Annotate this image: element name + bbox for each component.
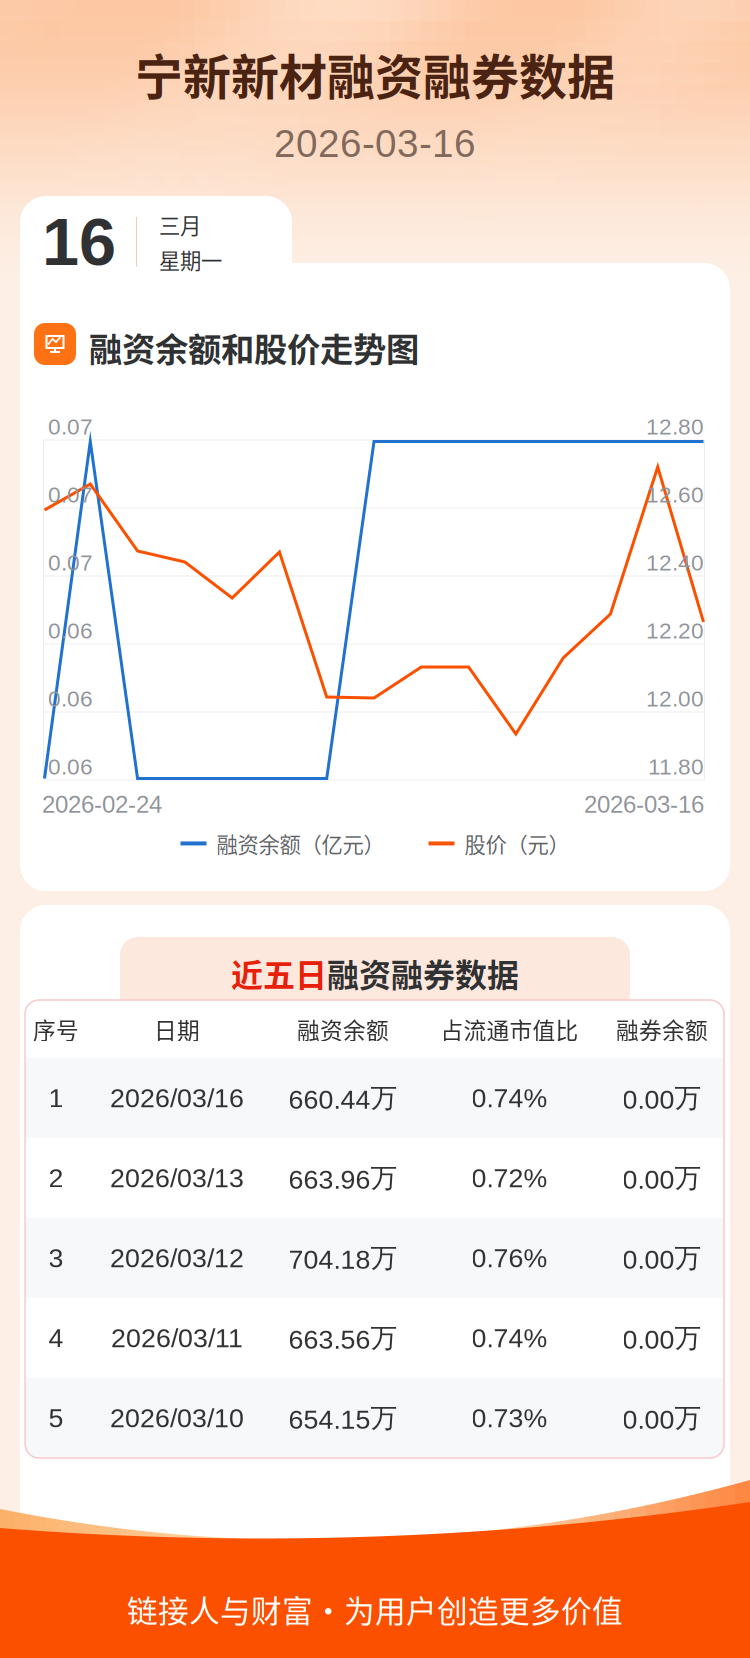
- staticText: 星期一: [159, 244, 222, 275]
- staticText: 660.44万: [288, 1081, 397, 1115]
- staticText: 2026/03/16: [110, 1083, 244, 1113]
- staticText: 0.06: [48, 686, 93, 711]
- staticText: 0.00万: [622, 1081, 701, 1115]
- staticText: 0.07: [48, 482, 93, 507]
- staticText: 663.96万: [288, 1161, 397, 1195]
- staticText: 占流通市值比: [440, 1013, 578, 1045]
- staticText: 2: [48, 1163, 63, 1193]
- staticText: 12.00: [646, 686, 704, 711]
- staticText: 12.20: [646, 618, 704, 643]
- staticText: 0.74%: [471, 1083, 547, 1113]
- staticText: 704.18万: [288, 1241, 397, 1275]
- staticText: 12.60: [646, 482, 704, 507]
- staticText: 0.06: [48, 618, 93, 643]
- staticText: 2026/03/13: [110, 1163, 244, 1193]
- staticText: 0.06: [48, 754, 93, 779]
- staticText: 近五日: [231, 950, 327, 996]
- staticText: 融资融券数据: [327, 950, 519, 996]
- staticText: 融资余额（亿元）: [216, 828, 384, 859]
- staticText: 2026-03-16: [584, 791, 704, 818]
- staticText: 0.00万: [622, 1401, 701, 1435]
- staticText: 融券余额: [616, 1013, 708, 1045]
- staticText: 股价（元）: [464, 828, 569, 859]
- staticText: 3: [48, 1243, 63, 1273]
- staticText: 0.07: [48, 414, 93, 439]
- staticText: 12.80: [646, 414, 704, 439]
- staticText: 0.00万: [622, 1161, 701, 1195]
- staticText: 16: [42, 205, 116, 279]
- staticText: 2026/03/10: [110, 1403, 244, 1433]
- staticText: 0.00万: [622, 1241, 701, 1275]
- staticText: 融资余额和股价走势图: [89, 323, 419, 371]
- staticText: 序号: [33, 1013, 79, 1045]
- staticText: 0.72%: [471, 1163, 547, 1193]
- staticText: 2026/03/12: [110, 1243, 244, 1273]
- staticText: 5: [48, 1403, 63, 1433]
- staticText: 宁新新材融资融券数据: [135, 39, 615, 108]
- staticText: 链接人与财富·为用户创造更多价值: [127, 1587, 623, 1631]
- staticText: 0.00万: [622, 1321, 701, 1355]
- staticText: 0.76%: [471, 1243, 547, 1273]
- staticText: 0.73%: [471, 1403, 547, 1433]
- staticText: 663.56万: [288, 1321, 397, 1355]
- staticText: 654.15万: [288, 1401, 397, 1435]
- staticText: 4: [48, 1323, 63, 1353]
- staticText: 日期: [154, 1013, 200, 1045]
- staticText: 2026/03/11: [111, 1323, 243, 1353]
- staticText: 2026-03-16: [274, 122, 476, 165]
- staticText: 0.74%: [471, 1323, 547, 1353]
- staticText: 三月: [159, 209, 201, 240]
- staticText: 11.80: [648, 754, 704, 779]
- staticText: 融资余额: [297, 1013, 389, 1045]
- staticText: 0.07: [48, 550, 93, 575]
- staticText: 2026-02-24: [42, 791, 162, 818]
- staticText: 12.40: [646, 550, 704, 575]
- staticText: 1: [48, 1083, 63, 1113]
